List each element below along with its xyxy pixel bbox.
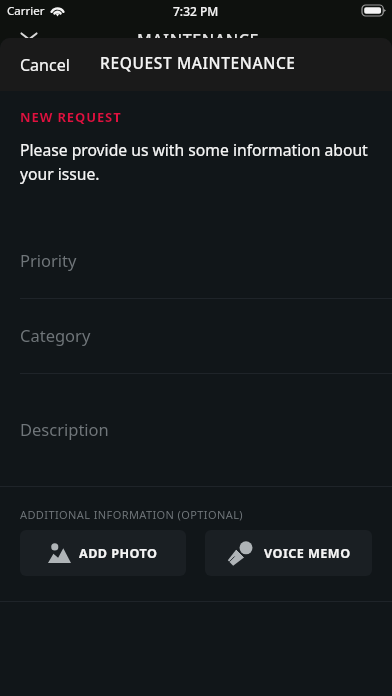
staticText: Cancel xyxy=(20,54,70,76)
staticText: 7:32 PM xyxy=(173,3,219,19)
staticText: MAINTENANCE xyxy=(137,29,260,45)
staticText: NEW REQUEST xyxy=(20,108,122,126)
button[interactable]: Category xyxy=(0,310,392,359)
staticText: ADD PHOTO xyxy=(79,545,158,562)
button[interactable]: ADD PHOTO xyxy=(20,530,186,576)
staticText: Category xyxy=(20,324,91,346)
staticText: Please provide us with some information … xyxy=(20,139,382,185)
other: Collapse xyxy=(20,31,38,42)
button[interactable]: VOICE MEMO xyxy=(205,530,372,576)
staticText: VOICE MEMO xyxy=(264,545,351,562)
staticText: Description xyxy=(20,418,109,440)
button[interactable]: Cancel xyxy=(0,39,88,91)
staticText: ADDITIONAL INFORMATION (OPTIONAL) xyxy=(20,507,244,522)
staticText: Priority xyxy=(20,249,77,271)
staticText: Carrier xyxy=(7,3,45,19)
staticText: REQUEST MAINTENANCE xyxy=(100,52,296,73)
button[interactable]: Priority xyxy=(0,235,392,284)
button[interactable]: Description xyxy=(0,399,392,485)
